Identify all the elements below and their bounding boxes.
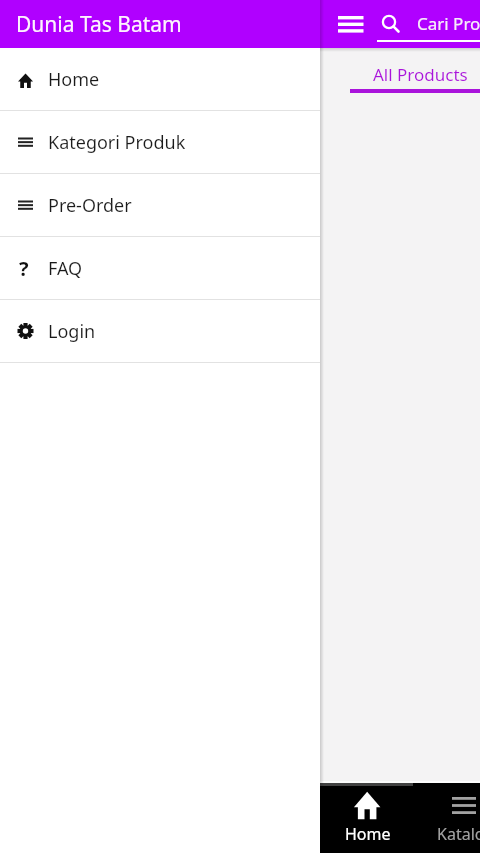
staticText: Home [345,823,391,841]
button[interactable] [330,6,372,42]
button[interactable]: Home [0,48,320,110]
staticText: All Products [373,63,468,86]
button[interactable]: Cari Produk... [377,0,480,48]
button[interactable]: ? [0,237,320,299]
button[interactable]: All Products [350,54,480,94]
button[interactable]: Home [336,783,400,853]
staticText: Cari Produk... [417,12,480,35]
staticText: Katalog [437,823,480,841]
staticText: Dunia Tas Batam [16,10,182,39]
staticText: Login [48,319,96,344]
staticText: Kategori Produk [48,130,186,155]
staticText: FAQ [48,256,83,281]
button[interactable]: Login [0,300,320,362]
staticText: Pre-Order [48,193,132,218]
button[interactable]: Kategori Produk [0,111,320,173]
staticText: ? [19,255,29,282]
button[interactable]: Pre-Order [0,174,320,236]
button[interactable]: Katalog [434,783,480,853]
staticText: Home [48,67,100,92]
